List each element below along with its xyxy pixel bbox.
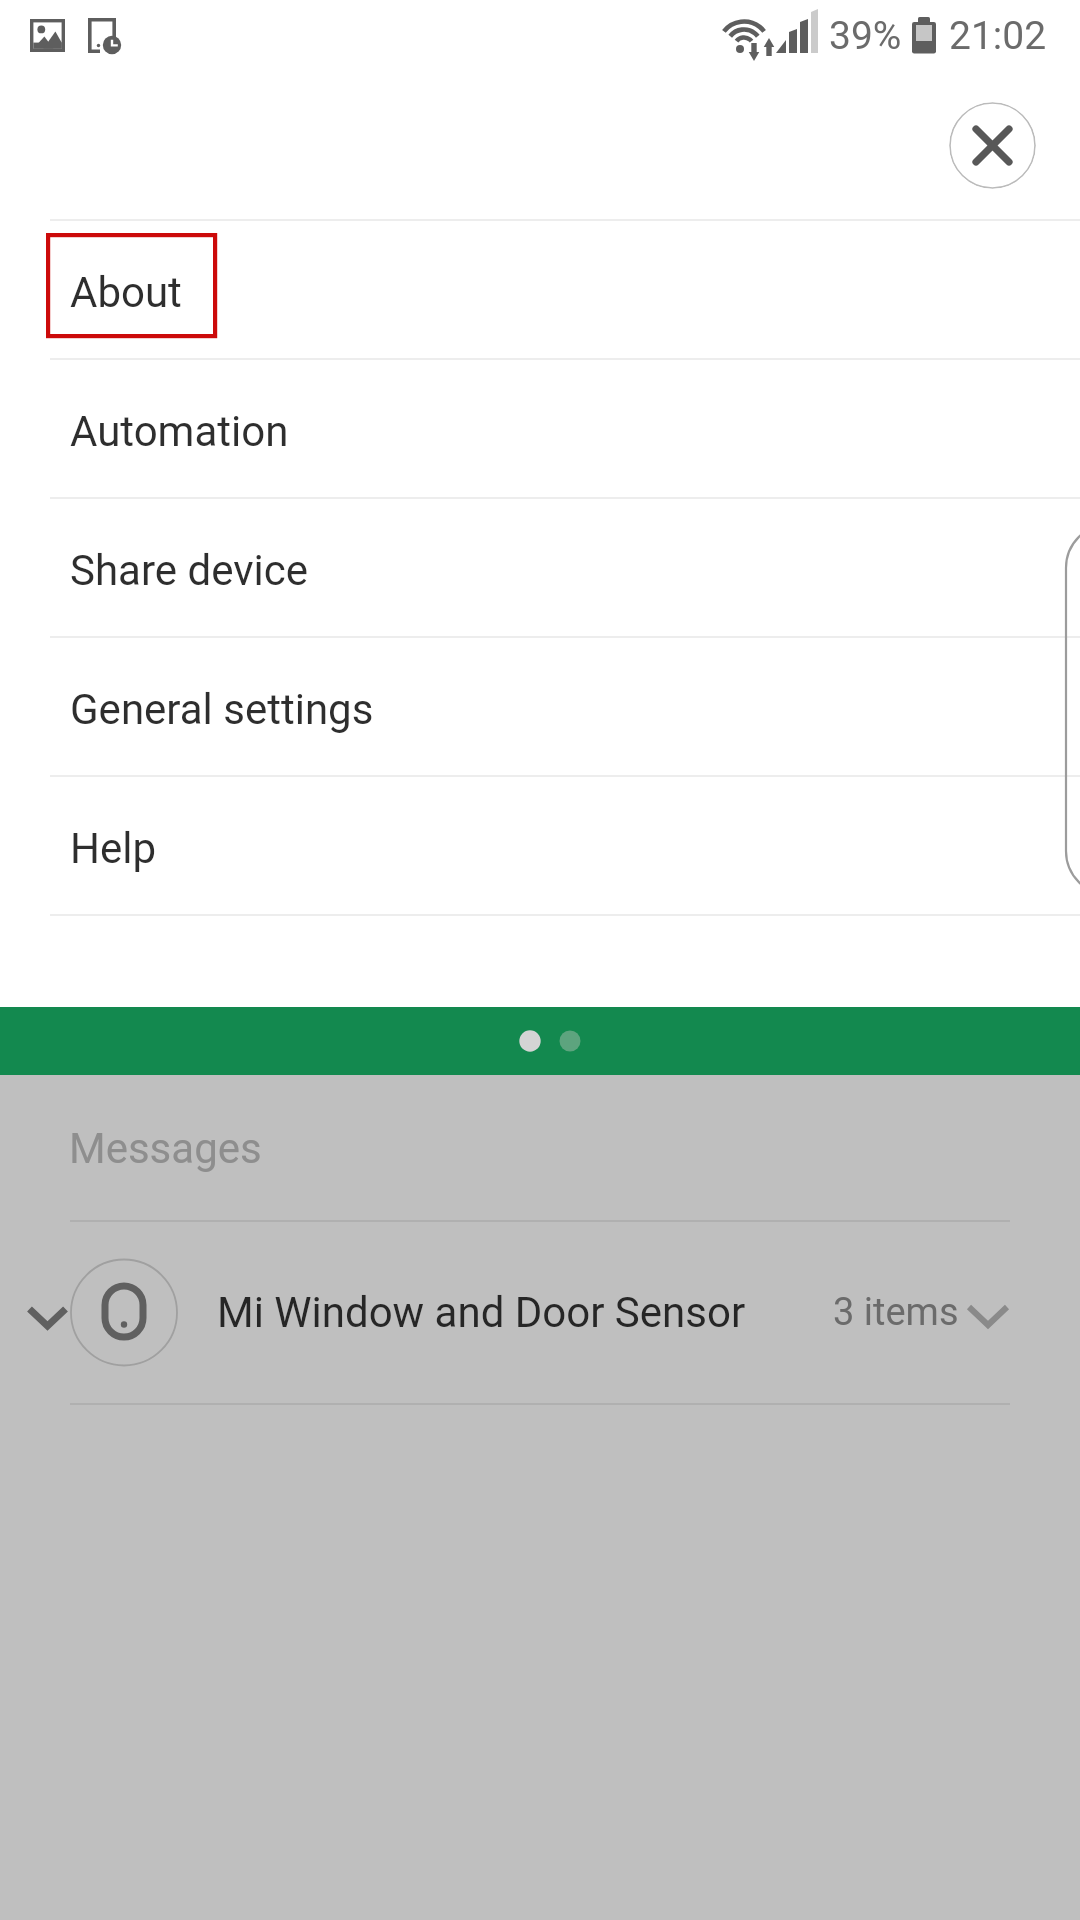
staticText: Mi Window and Door Sensor	[217, 1288, 746, 1337]
button[interactable]: General settings	[0, 638, 1080, 775]
button[interactable]: Close	[949, 102, 1036, 189]
button[interactable]: Collapse group	[16, 1281, 80, 1345]
button[interactable]: Automation	[0, 360, 1080, 497]
button[interactable]: About	[0, 221, 1080, 358]
button[interactable]: Page 2	[550, 1021, 590, 1061]
button[interactable]: Expand group	[956, 1281, 1020, 1345]
staticText: Help	[70, 824, 157, 873]
button[interactable]: Help	[0, 777, 1080, 914]
staticText: Messages	[69, 1124, 262, 1173]
staticText: Share device	[70, 546, 308, 595]
staticText: 21:02	[949, 13, 1047, 59]
button[interactable]: Share device	[0, 499, 1080, 636]
button[interactable]: Page 1	[510, 1021, 550, 1061]
staticText: Automation	[70, 407, 289, 456]
staticText: About	[70, 268, 182, 317]
staticText: 3 items	[833, 1290, 959, 1335]
staticText: 39%	[829, 13, 902, 59]
staticText: General settings	[70, 685, 374, 734]
button[interactable]: Collapse group	[0, 1222, 1080, 1403]
